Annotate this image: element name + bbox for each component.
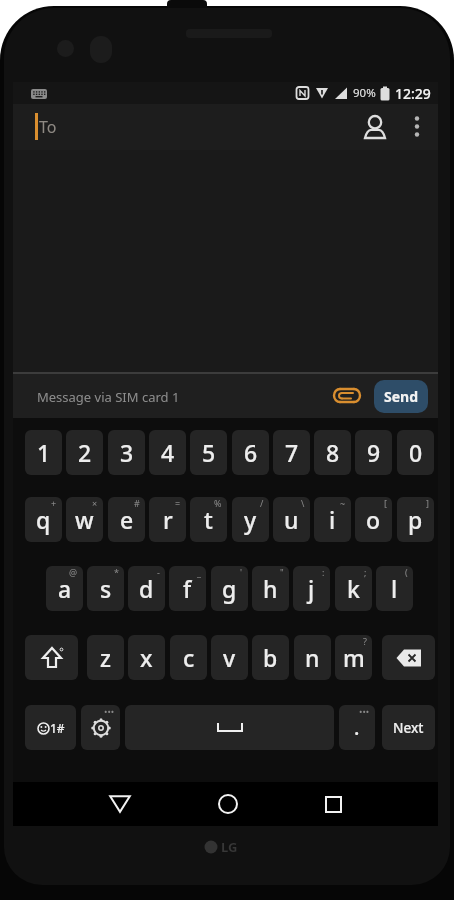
button[interactable]: 1	[25, 430, 62, 475]
staticText: '	[240, 566, 243, 578]
staticText: f	[183, 573, 192, 604]
staticText: a	[58, 573, 72, 604]
button[interactable]	[408, 114, 426, 140]
staticText: t	[204, 504, 213, 535]
button[interactable]: d	[128, 566, 165, 611]
staticText: =	[175, 497, 181, 509]
staticText: +	[51, 497, 57, 509]
button[interactable]: 0	[397, 430, 434, 475]
button[interactable]: .	[339, 705, 375, 750]
staticText: k	[347, 573, 360, 604]
button[interactable]: m	[335, 635, 372, 680]
staticText: %	[214, 497, 222, 509]
button[interactable]: q	[25, 497, 62, 542]
button[interactable]: t	[190, 497, 227, 542]
button[interactable]: n	[294, 635, 331, 680]
staticText: 2	[78, 437, 92, 468]
button[interactable]: s	[87, 566, 124, 611]
button[interactable]: 5	[190, 430, 227, 475]
button[interactable]: 4	[149, 430, 186, 475]
staticText: 3	[120, 437, 134, 468]
staticText: 90%	[353, 85, 376, 101]
staticText: [	[384, 497, 387, 509]
button[interactable]: 2	[66, 430, 103, 475]
staticText: (	[405, 566, 408, 578]
button[interactable]: 1#	[25, 705, 76, 750]
button[interactable]: 7	[273, 430, 310, 475]
button[interactable]: a	[46, 566, 83, 611]
button[interactable]	[311, 782, 355, 826]
button[interactable]: o	[355, 497, 392, 542]
staticText: l	[391, 573, 398, 604]
button[interactable]: v	[211, 635, 248, 680]
staticText: v	[223, 642, 236, 673]
staticText: Send	[384, 387, 419, 406]
button[interactable]: w	[66, 497, 103, 542]
staticText: e	[120, 504, 134, 535]
staticText: m	[343, 642, 365, 673]
button[interactable]	[331, 385, 363, 407]
button[interactable]: j	[293, 566, 330, 611]
button[interactable]: r	[149, 497, 186, 542]
staticText: 9	[367, 437, 381, 468]
staticText: j	[308, 573, 315, 604]
staticText: y	[244, 504, 257, 535]
staticText: ;	[364, 566, 367, 578]
staticText: d	[139, 573, 154, 604]
staticText: •••	[104, 705, 115, 717]
staticText: _	[197, 566, 201, 578]
staticText: #	[134, 497, 140, 509]
button[interactable]: x	[128, 635, 165, 680]
staticText: /	[260, 497, 264, 509]
staticText: i	[329, 504, 336, 535]
staticText: "	[280, 566, 284, 578]
button[interactable]: l	[376, 566, 413, 611]
button[interactable]: y	[232, 497, 269, 542]
staticText: LG	[221, 838, 238, 856]
button[interactable]: u	[273, 497, 310, 542]
button[interactable]: p	[397, 497, 434, 542]
button[interactable]: g	[211, 566, 248, 611]
button[interactable]: f	[169, 566, 206, 611]
staticText: .	[354, 714, 360, 741]
button[interactable]: Send	[374, 380, 428, 413]
staticText: Next	[393, 719, 424, 737]
staticText: •••	[359, 705, 370, 717]
button[interactable]	[382, 635, 435, 680]
staticText: 0	[409, 437, 423, 468]
staticText: r	[163, 504, 173, 535]
staticText: q	[36, 504, 51, 535]
staticText: 1#	[50, 720, 65, 736]
staticText: 4	[161, 437, 175, 468]
button[interactable]: i	[314, 497, 351, 542]
staticText: u	[284, 504, 299, 535]
staticText: 12:29	[395, 84, 431, 103]
button[interactable]	[206, 782, 250, 826]
button[interactable]	[98, 782, 142, 826]
button[interactable]: 9	[355, 430, 392, 475]
staticText: 1	[37, 437, 51, 468]
staticText: h	[263, 573, 278, 604]
staticText: o	[366, 504, 381, 535]
button[interactable]: To	[13, 104, 438, 150]
button[interactable]: z	[87, 635, 124, 680]
button[interactable]	[125, 705, 334, 750]
button[interactable]: b	[252, 635, 289, 680]
button[interactable]	[362, 114, 388, 140]
button[interactable]: c	[170, 635, 207, 680]
button[interactable]: 8	[314, 430, 351, 475]
button[interactable]	[25, 635, 78, 680]
staticText: c	[183, 642, 195, 673]
button[interactable]: h	[252, 566, 289, 611]
button[interactable]: e	[108, 497, 145, 542]
staticText: g	[222, 573, 237, 604]
staticText: x	[140, 642, 153, 673]
staticText: To	[39, 116, 57, 138]
button[interactable]: •••	[81, 705, 120, 750]
button[interactable]: k	[335, 566, 372, 611]
staticText: :	[322, 566, 325, 578]
button[interactable]: Next	[382, 705, 435, 750]
staticText: 6	[244, 437, 258, 468]
button[interactable]: 6	[232, 430, 269, 475]
button[interactable]: 3	[108, 430, 145, 475]
